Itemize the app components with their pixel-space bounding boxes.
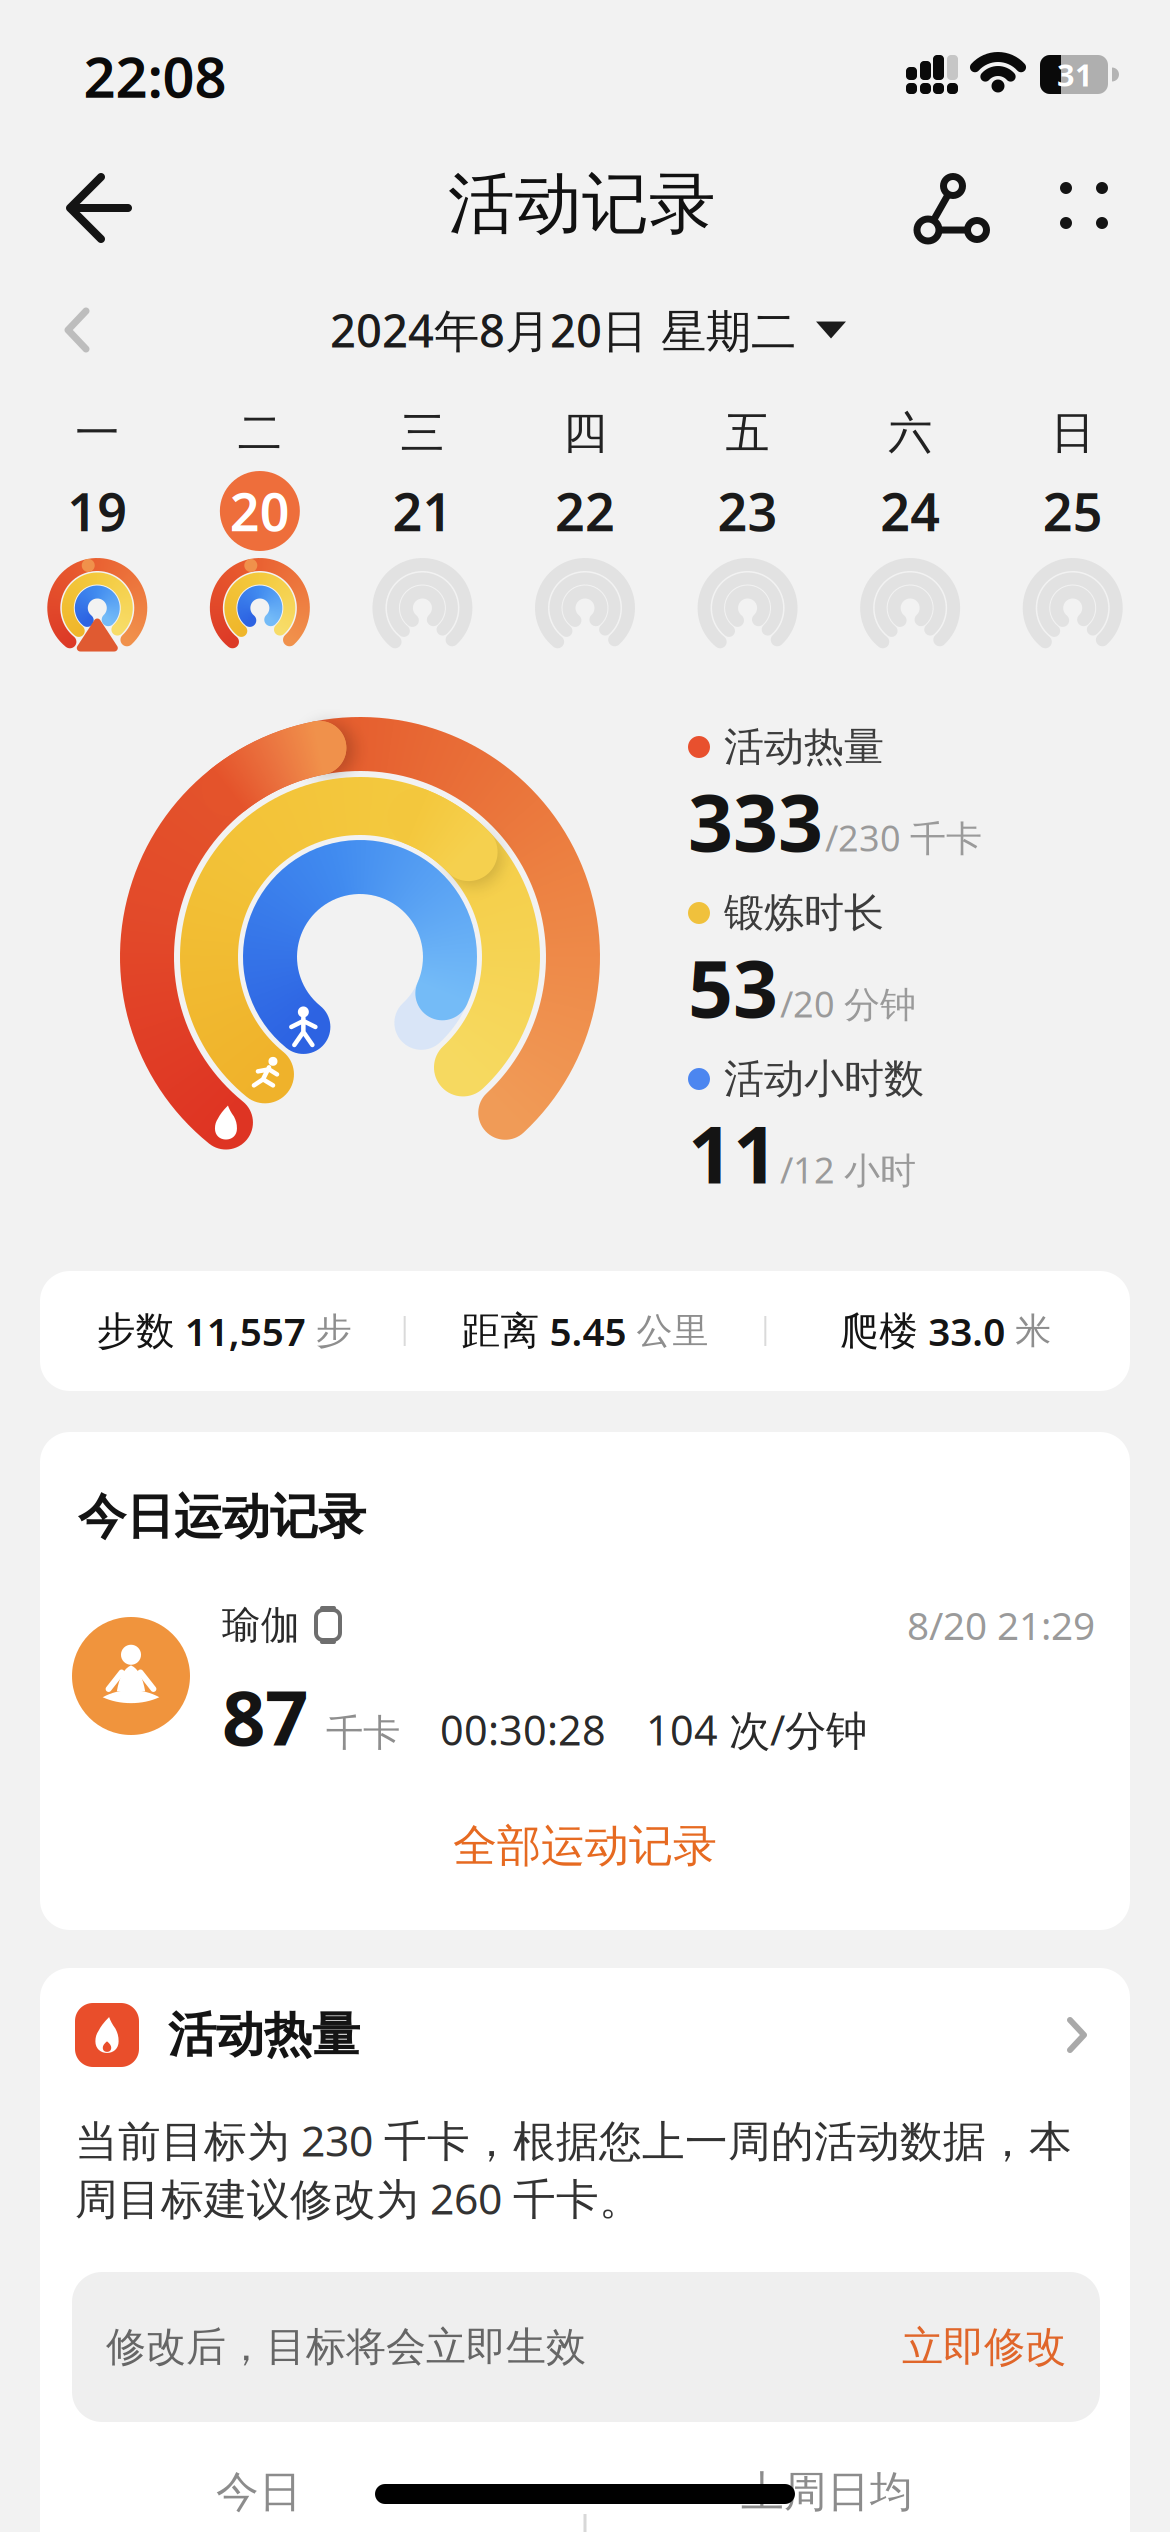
staticText: /12 小时: [780, 1146, 916, 1193]
staticText: 日: [1051, 406, 1095, 460]
staticText: 爬楼: [840, 1307, 918, 1355]
staticText: 公里: [636, 1309, 708, 1353]
staticText: 活动记录: [448, 163, 716, 245]
staticText: 5.45: [549, 1305, 626, 1357]
staticText: 步数: [97, 1307, 175, 1355]
staticText: 全部运动记录: [453, 1819, 717, 1873]
staticText: 25: [1043, 476, 1103, 546]
staticText: /230 千卡: [825, 814, 982, 861]
staticText: 六: [888, 406, 932, 460]
staticText: 当前目标为 230 千卡，根据您上一周的活动数据，本: [75, 2112, 1072, 2168]
staticText: /20 分钟: [780, 980, 916, 1027]
button[interactable]: Share: [912, 168, 992, 248]
staticText: 20: [230, 476, 290, 546]
staticText: 22: [555, 476, 615, 546]
staticText: 11: [688, 1101, 778, 1205]
staticText: 24: [880, 476, 940, 546]
staticText: 周目标建议修改为 260 千卡。: [75, 2170, 642, 2226]
staticText: 33.0: [928, 1305, 1005, 1357]
staticText: 三: [400, 406, 444, 460]
button[interactable]: 20: [208, 471, 312, 660]
staticText: 53: [688, 935, 778, 1039]
button[interactable]: 21: [370, 471, 474, 660]
staticText: 锻炼时长: [724, 888, 884, 937]
staticText: 上周日均: [741, 2466, 913, 2518]
staticText: 22:08: [83, 39, 226, 113]
button[interactable]: 23: [696, 471, 800, 660]
button[interactable]: More: [1043, 166, 1123, 246]
button[interactable]: 全部运动记录: [453, 1819, 717, 1873]
staticText: 31: [1057, 54, 1093, 95]
button[interactable]: 瑜伽: [62, 1600, 1108, 1752]
button[interactable]: 24: [858, 471, 962, 660]
staticText: 19: [67, 476, 127, 546]
staticText: 23: [718, 476, 778, 546]
staticText: 21: [392, 476, 452, 546]
staticText: 千卡: [326, 1710, 400, 1756]
button[interactable]: 25: [1021, 471, 1125, 660]
button[interactable]: 19: [45, 471, 149, 660]
button[interactable]: Back: [62, 167, 138, 249]
button[interactable]: 2024年8月20日 星期二: [330, 300, 846, 360]
staticText: 活动热量: [724, 722, 884, 771]
staticText: 距离: [461, 1307, 539, 1355]
button[interactable]: Details: [1066, 2016, 1090, 2054]
staticText: 活动热量: [168, 2005, 360, 2064]
staticText: 8/20 21:29: [907, 1599, 1095, 1651]
button[interactable]: Previous day: [62, 305, 94, 355]
staticText: 活动小时数: [724, 1054, 924, 1103]
staticText: 今日: [216, 2466, 302, 2518]
staticText: 00:30:28: [440, 1702, 606, 1757]
staticText: 104 次/分钟: [646, 1702, 867, 1757]
staticText: 五: [726, 406, 770, 460]
staticText: 步: [316, 1309, 352, 1353]
button[interactable]: 22: [533, 471, 637, 660]
staticText: 米: [1015, 1309, 1051, 1353]
staticText: 修改后，目标将会立即生效: [106, 2322, 586, 2371]
staticText: 333: [688, 769, 823, 873]
staticText: 四: [563, 406, 607, 460]
staticText: 二: [238, 406, 282, 460]
staticText: 87: [222, 1665, 308, 1766]
staticText: 2024年8月20日 星期二: [330, 300, 796, 360]
staticText: 一: [75, 406, 119, 460]
staticText: 瑜伽: [222, 1601, 300, 1649]
staticText: 立即修改: [902, 2322, 1066, 2372]
staticText: 今日运动记录: [78, 1487, 366, 1546]
button[interactable]: 立即修改: [902, 2322, 1066, 2372]
staticText: 11,557: [185, 1305, 306, 1357]
